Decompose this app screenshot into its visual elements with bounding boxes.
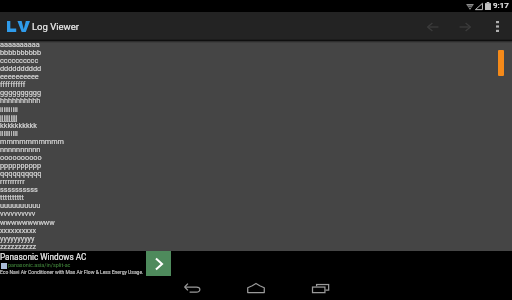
staticText: gggggggggg <box>0 88 41 97</box>
staticText: Eco Navi Air Conditioner with Max Air Fl… <box>0 269 144 275</box>
staticText: xxxxxxxxxx <box>0 226 37 235</box>
staticText: eeeeeeeeee <box>0 72 39 81</box>
staticText: Panasonic Windows AC <box>0 252 87 262</box>
staticText: ssssssssss <box>0 185 38 194</box>
staticText: mmmmmmmmmm <box>0 137 64 146</box>
staticText: aaaaaaaaaa <box>0 40 40 49</box>
staticText: qqqqqqqqqq <box>0 169 42 178</box>
staticText: wwwwwwwwww <box>0 218 55 227</box>
staticText: rrrrrrrrrr <box>0 177 25 186</box>
staticText: pppppppppp <box>0 161 41 170</box>
button[interactable]: More options <box>487 12 507 41</box>
staticText: nnnnnnnnnn <box>0 145 41 154</box>
staticText: Log Viewer <box>32 21 80 32</box>
staticText: uuuuuuuuuu <box>0 201 41 210</box>
staticText: hhhhhhhhhh <box>0 96 41 105</box>
staticText: iiiiiiiiii <box>0 105 18 114</box>
button[interactable]: Back <box>177 276 207 300</box>
staticText: cccccccccc <box>0 56 39 65</box>
staticText: bbbbbbbbbb <box>0 48 41 57</box>
button[interactable]: Forward <box>452 12 477 41</box>
staticText: panasonic.asia/in/split-ac <box>8 262 71 268</box>
staticText: tttttttttt <box>0 193 24 202</box>
staticText: vvvvvvvvvv <box>0 209 36 218</box>
button[interactable]: Home <box>241 276 271 300</box>
staticText: oooooooooo <box>0 153 42 162</box>
staticText: llllllllll <box>0 129 18 138</box>
staticText: jjjjjjjjjj <box>0 113 18 122</box>
staticText: ffffffffff <box>0 80 26 89</box>
staticText: yyyyyyyyyy <box>0 234 35 243</box>
button[interactable]: Open advertisement <box>146 251 171 276</box>
staticText: 9:17 <box>493 1 509 10</box>
button[interactable]: Back <box>420 12 445 41</box>
staticText: kkkkkkkkkk <box>0 121 37 130</box>
staticText: zzzzzzzzzz <box>0 242 37 251</box>
button[interactable]: Recent apps <box>305 276 335 300</box>
staticText: dddddddddd <box>0 64 42 73</box>
